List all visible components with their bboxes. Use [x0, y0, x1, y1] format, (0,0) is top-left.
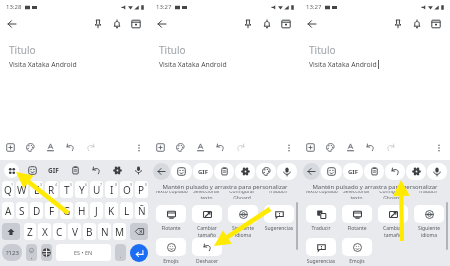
button[interactable]: Archive — [279, 17, 293, 31]
button[interactable]: ?123 — [2, 244, 22, 261]
button[interactable]: Settings — [406, 163, 426, 180]
button[interactable]: Redo — [84, 141, 97, 154]
button[interactable]: Voice input — [427, 163, 447, 180]
button[interactable]: Emojis — [156, 238, 186, 256]
button[interactable]: Undo — [364, 141, 377, 154]
button[interactable]: Pin — [91, 17, 105, 31]
button[interactable]: Backspace — [130, 223, 148, 240]
button[interactable]: Text format — [44, 141, 57, 154]
button[interactable]: X — [38, 223, 51, 240]
staticText: M — [115, 225, 125, 239]
button[interactable]: , — [26, 244, 37, 261]
button[interactable]: Back — [154, 16, 170, 32]
button[interactable]: G — [60, 202, 73, 219]
button[interactable]: More options — [432, 141, 445, 154]
button[interactable]: Redo — [384, 141, 397, 154]
button[interactable]: W — [16, 181, 28, 198]
button[interactable]: Y — [75, 181, 88, 198]
button[interactable]: Reminder — [110, 17, 124, 31]
button[interactable]: N — [98, 223, 111, 240]
button[interactable]: Cambiar tamaño — [192, 205, 222, 223]
button[interactable]: Undo — [89, 163, 104, 178]
button[interactable]: Add — [154, 141, 167, 154]
button[interactable]: Add — [304, 141, 317, 154]
button[interactable]: J — [90, 202, 103, 219]
button[interactable]: Stickers — [321, 163, 342, 180]
button[interactable]: B — [83, 223, 96, 240]
button[interactable]: Themes — [256, 163, 276, 180]
button[interactable]: U — [90, 181, 103, 198]
button[interactable]: Back — [153, 163, 170, 180]
button[interactable]: Palette — [24, 141, 37, 154]
button[interactable]: ES • EN — [56, 244, 111, 261]
button[interactable]: Back — [304, 16, 320, 32]
button[interactable]: C — [53, 223, 66, 240]
button[interactable]: Traducir — [306, 205, 336, 223]
button[interactable]: L — [120, 202, 133, 219]
button[interactable]: Pin — [391, 17, 405, 31]
button[interactable]: Back — [303, 163, 320, 180]
button[interactable]: Z — [24, 223, 36, 240]
button[interactable]: GIF — [343, 163, 363, 180]
button[interactable]: K — [105, 202, 118, 219]
button[interactable]: Enter — [130, 244, 148, 262]
button[interactable]: Palette — [174, 141, 187, 154]
button[interactable]: Pin — [241, 17, 255, 31]
button[interactable]: Archive — [129, 17, 143, 31]
button[interactable]: Flotante — [156, 205, 186, 223]
button[interactable]: Add — [4, 141, 17, 154]
button[interactable]: Ñ — [135, 202, 148, 219]
button[interactable]: More options — [282, 141, 295, 154]
button[interactable]: A — [2, 202, 14, 219]
button[interactable]: Reminder — [410, 17, 424, 31]
button[interactable]: Cambiar tamaño — [378, 205, 408, 223]
button[interactable]: Voice input — [277, 163, 297, 180]
button[interactable]: H — [75, 202, 88, 219]
button[interactable]: Settings — [235, 163, 255, 180]
button[interactable]: Redo — [234, 141, 247, 154]
button[interactable]: Stickers — [25, 163, 40, 178]
button[interactable]: Back — [4, 16, 20, 32]
button[interactable]: Text format — [194, 141, 207, 154]
button[interactable]: Sugerencias — [306, 238, 336, 256]
button[interactable]: S — [16, 202, 28, 219]
button[interactable]: Palette — [324, 141, 337, 154]
button[interactable]: Deshacer — [192, 238, 222, 256]
button[interactable]: I — [105, 181, 118, 198]
button[interactable]: T — [60, 181, 73, 198]
button[interactable]: Reminder — [260, 17, 274, 31]
button[interactable]: Shift — [2, 223, 20, 240]
staticText: X — [42, 225, 48, 239]
button[interactable]: V — [68, 223, 81, 240]
button[interactable]: Siguiente idioma — [414, 205, 444, 223]
button[interactable]: Clipboard — [364, 163, 384, 180]
button[interactable]: O — [120, 181, 133, 198]
button[interactable]: R — [45, 181, 58, 198]
button[interactable]: Undo — [385, 163, 405, 180]
button[interactable]: E — [30, 181, 43, 198]
button[interactable]: GIF — [46, 163, 61, 178]
button[interactable]: Emojis — [342, 238, 372, 256]
button[interactable]: Clipboard — [214, 163, 234, 180]
button[interactable]: Undo — [214, 141, 227, 154]
button[interactable]: . — [115, 244, 126, 261]
button[interactable]: Archive — [429, 17, 443, 31]
button[interactable]: Undo — [64, 141, 77, 154]
button[interactable]: Siguiente idioma — [228, 205, 258, 223]
button[interactable]: Voice input — [131, 163, 146, 178]
button[interactable]: P — [135, 181, 148, 198]
button[interactable]: Flotante — [342, 205, 372, 223]
button[interactable]: F — [45, 202, 58, 219]
button[interactable]: More options — [132, 141, 145, 154]
button[interactable]: Sugerencias — [264, 205, 294, 223]
button[interactable]: Stickers — [171, 163, 192, 180]
button[interactable]: All tools — [4, 163, 19, 178]
button[interactable]: M — [113, 223, 126, 240]
button[interactable]: Q — [2, 181, 14, 198]
button[interactable]: Text format — [344, 141, 357, 154]
button[interactable]: D — [30, 202, 43, 219]
button[interactable]: Settings — [110, 163, 125, 178]
button[interactable]: GIF — [193, 163, 213, 180]
button[interactable]: Change language — [41, 244, 52, 261]
button[interactable]: Clipboard — [68, 163, 83, 178]
